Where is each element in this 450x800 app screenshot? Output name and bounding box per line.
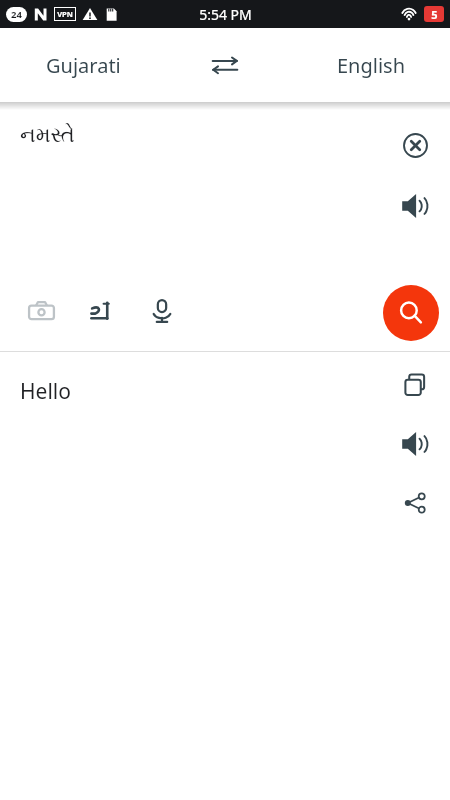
button[interactable]: Handwriting input xyxy=(80,290,122,332)
button[interactable]: Listen xyxy=(394,423,436,465)
staticText: 24 xyxy=(11,8,22,21)
staticText: English xyxy=(337,52,406,79)
staticText: Hello xyxy=(20,377,71,406)
button[interactable]: Clear xyxy=(394,124,436,166)
staticText: 5 xyxy=(431,7,438,22)
button[interactable]: Listen xyxy=(394,185,436,227)
button[interactable]: English xyxy=(337,52,406,79)
staticText: 5:54 PM xyxy=(199,5,252,24)
staticText: નમસ્તે xyxy=(20,125,75,146)
staticText: Gujarati xyxy=(46,52,121,79)
button[interactable]: Camera input xyxy=(20,290,62,332)
button[interactable]: Gujarati xyxy=(46,52,121,79)
button[interactable]: Voice input xyxy=(141,290,183,332)
button[interactable]: Share xyxy=(394,482,436,524)
button[interactable]: Swap languages xyxy=(202,42,248,88)
button[interactable]: Translate xyxy=(383,285,439,341)
staticText: VPN xyxy=(57,9,73,19)
button[interactable]: Copy xyxy=(394,364,436,406)
